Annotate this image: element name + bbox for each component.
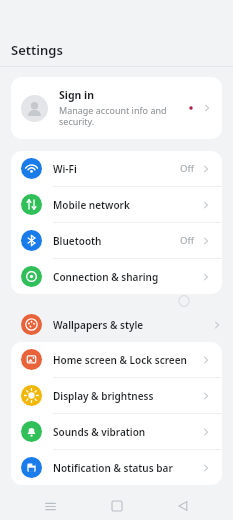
button[interactable]: Wi-Fi	[11, 151, 222, 186]
staticText: Notification & status bar	[53, 461, 201, 475]
staticText: Settings	[11, 41, 63, 59]
button[interactable]: Bluetooth	[11, 223, 222, 258]
staticText: Sign in	[59, 88, 95, 102]
staticText: Manage account info and security.	[59, 104, 167, 128]
button[interactable]: Wallpapers & style	[0, 307, 233, 342]
staticText: Home screen & Lock screen	[53, 353, 201, 367]
button[interactable]: Home	[100, 492, 134, 520]
staticText: Wallpapers & style	[53, 318, 212, 332]
button[interactable]: Home screen & Lock screen	[11, 342, 222, 377]
staticText: Sounds & vibration	[53, 425, 201, 439]
button[interactable]: Back	[166, 492, 200, 520]
button[interactable]: Recent apps	[33, 492, 67, 520]
button[interactable]: Connection & sharing	[11, 259, 222, 294]
button[interactable]: Sounds & vibration	[11, 414, 222, 449]
staticText: Mobile network	[53, 198, 201, 212]
button[interactable]: Mobile network	[11, 187, 222, 222]
staticText: Display & brightness	[53, 389, 201, 403]
staticText: Bluetooth	[53, 234, 180, 248]
staticText: Wi-Fi	[53, 162, 180, 176]
button[interactable]: Notification & status bar	[11, 450, 222, 485]
staticText: Off	[180, 162, 194, 175]
staticText: Off	[180, 234, 194, 247]
button[interactable]: Sign in	[11, 77, 222, 139]
staticText: Connection & sharing	[53, 270, 201, 284]
button[interactable]: Display & brightness	[11, 378, 222, 413]
